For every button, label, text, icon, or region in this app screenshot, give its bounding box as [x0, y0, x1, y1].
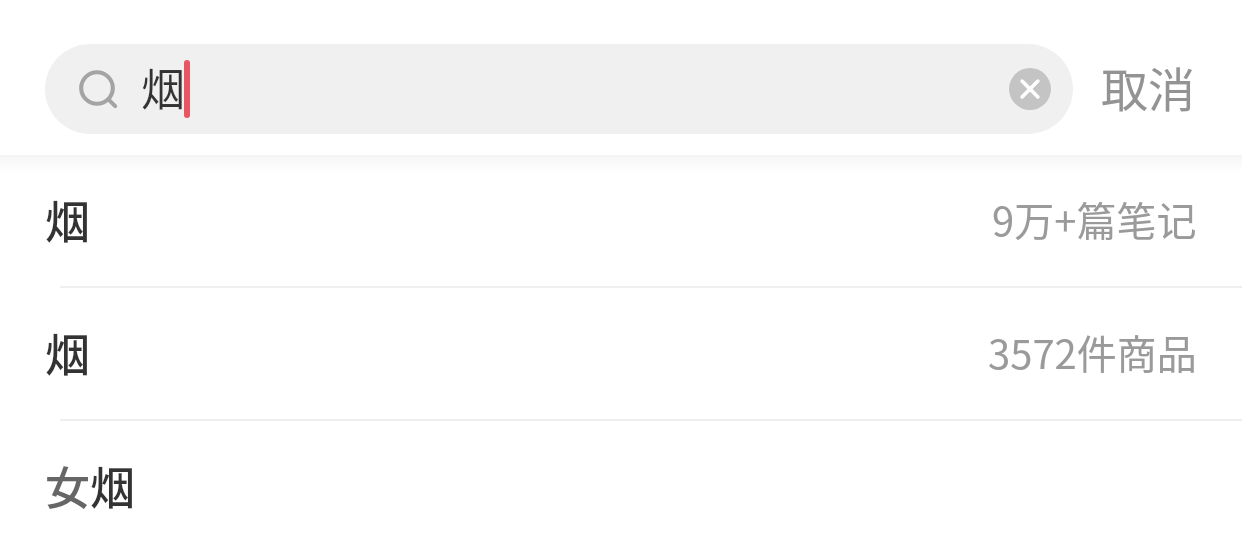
button[interactable]: 烟 — [0, 155, 1242, 288]
staticText: 女烟 — [45, 453, 136, 518]
staticText: 烟 — [45, 187, 91, 252]
staticText: 烟 — [45, 320, 91, 385]
button[interactable]: 女烟 — [0, 421, 1242, 548]
staticText: 9万+篇笔记 — [992, 190, 1197, 248]
staticText: 取消 — [1101, 52, 1195, 120]
staticText: 3572件商品 — [988, 323, 1197, 381]
button[interactable]: 烟 — [45, 44, 1073, 134]
button[interactable]: 取消 — [1073, 44, 1223, 134]
button[interactable]: 烟 — [0, 288, 1242, 421]
button[interactable]: Clear search text — [1009, 68, 1051, 110]
staticText: 烟 — [141, 55, 185, 119]
